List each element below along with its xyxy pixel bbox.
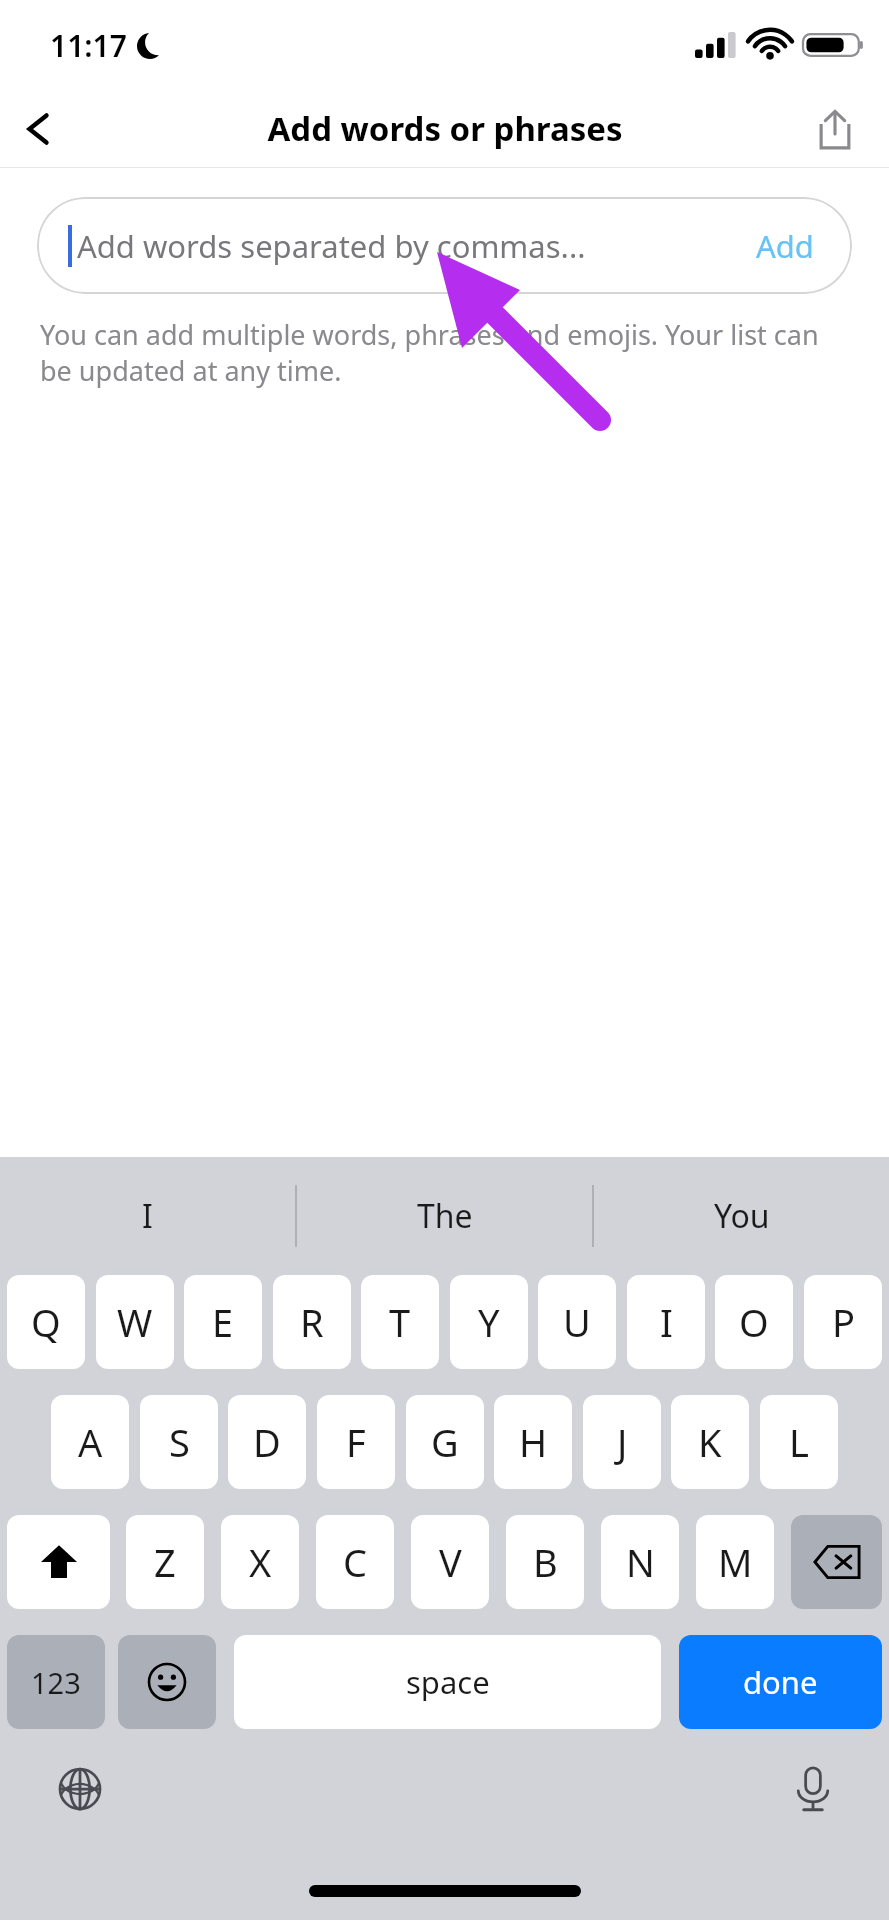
staticText: 11:17 <box>50 25 127 66</box>
button[interactable]: S <box>140 1395 218 1489</box>
button[interactable]: V <box>411 1515 489 1609</box>
staticText: S <box>169 1416 190 1468</box>
button[interactable]: done <box>679 1635 882 1729</box>
button[interactable]: X <box>221 1515 299 1609</box>
button[interactable]: E <box>184 1275 262 1369</box>
staticText: L <box>789 1416 809 1468</box>
button[interactable]: Emoji <box>118 1635 216 1729</box>
button[interactable]: I <box>0 1157 295 1275</box>
staticText: E <box>212 1296 234 1348</box>
button[interactable]: Back <box>0 90 78 167</box>
button[interactable]: D <box>228 1395 306 1489</box>
staticText: N <box>626 1536 655 1588</box>
staticText: J <box>617 1416 628 1468</box>
button[interactable]: K <box>671 1395 749 1489</box>
staticText: P <box>832 1296 855 1348</box>
button[interactable]: A <box>51 1395 129 1489</box>
staticText: X <box>249 1536 272 1588</box>
button[interactable]: Z <box>126 1515 204 1609</box>
staticText: Add words separated by commas... <box>77 225 586 267</box>
button[interactable]: Y <box>450 1275 528 1369</box>
button[interactable]: B <box>506 1515 584 1609</box>
button[interactable]: W <box>96 1275 174 1369</box>
button[interactable]: Shift <box>7 1515 110 1609</box>
button[interactable]: Add <box>752 219 818 273</box>
button[interactable]: Backspace <box>791 1515 882 1609</box>
button[interactable]: R <box>273 1275 351 1369</box>
staticText: A <box>78 1416 103 1468</box>
button[interactable]: Add words separated by commas... <box>37 197 852 294</box>
button[interactable]: F <box>317 1395 395 1489</box>
staticText: Add words or phrases <box>267 106 623 151</box>
staticText: You can add multiple words, phrases and … <box>40 316 849 389</box>
button[interactable]: O <box>715 1275 793 1369</box>
button[interactable]: U <box>538 1275 616 1369</box>
button[interactable]: Q <box>7 1275 85 1369</box>
staticText: M <box>718 1536 753 1588</box>
staticText: B <box>533 1536 558 1588</box>
button[interactable]: T <box>361 1275 439 1369</box>
staticText: Z <box>154 1536 176 1588</box>
button[interactable]: L <box>760 1395 838 1489</box>
button[interactable]: Change keyboard language <box>44 1753 116 1825</box>
button[interactable]: J <box>583 1395 661 1489</box>
staticText: G <box>431 1416 459 1468</box>
button[interactable]: Dictate <box>777 1753 849 1825</box>
staticText: H <box>519 1416 548 1468</box>
button[interactable]: I <box>627 1275 705 1369</box>
staticText: I <box>142 1194 153 1238</box>
staticText: Q <box>31 1296 61 1348</box>
staticText: You <box>714 1194 770 1238</box>
button[interactable]: H <box>494 1395 572 1489</box>
staticText: O <box>739 1296 769 1348</box>
staticText: D <box>253 1416 281 1468</box>
staticText: K <box>698 1416 722 1468</box>
staticText: I <box>660 1296 673 1348</box>
staticText: R <box>300 1296 324 1348</box>
staticText: T <box>389 1296 411 1348</box>
button[interactable]: The <box>297 1157 592 1275</box>
staticText: done <box>743 1661 818 1703</box>
button[interactable]: Share <box>799 93 871 165</box>
staticText: W <box>117 1296 153 1348</box>
staticText: C <box>343 1536 368 1588</box>
staticText: F <box>346 1416 366 1468</box>
button[interactable]: P <box>804 1275 882 1369</box>
button[interactable]: space <box>234 1635 661 1729</box>
staticText: space <box>406 1661 490 1703</box>
button[interactable]: G <box>406 1395 484 1489</box>
button[interactable]: C <box>316 1515 394 1609</box>
staticText: Add <box>756 225 814 267</box>
staticText: Y <box>478 1296 500 1348</box>
button[interactable]: You <box>594 1157 889 1275</box>
button[interactable]: N <box>601 1515 679 1609</box>
button[interactable]: M <box>696 1515 774 1609</box>
staticText: U <box>563 1296 591 1348</box>
staticText: The <box>417 1194 473 1238</box>
staticText: V <box>439 1536 462 1588</box>
staticText: 123 <box>31 1663 81 1702</box>
button[interactable]: 123 <box>7 1635 105 1729</box>
